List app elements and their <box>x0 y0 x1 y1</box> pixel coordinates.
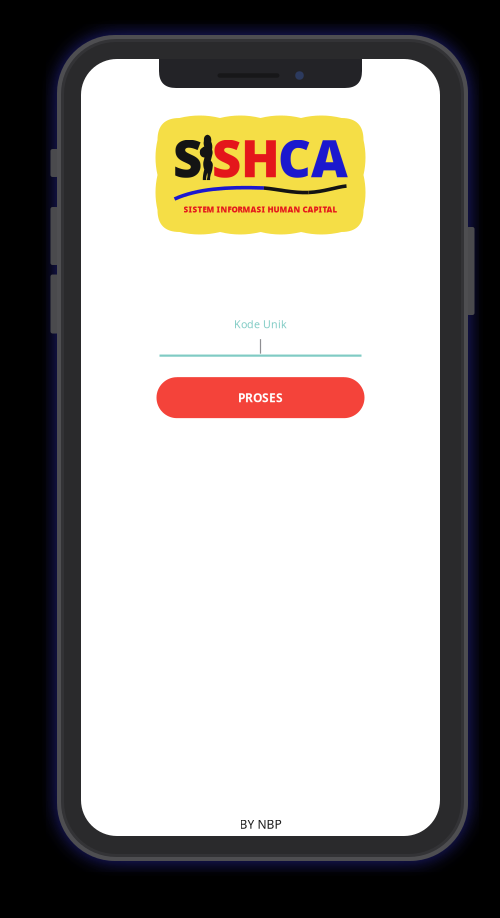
button[interactable]: PROSES <box>156 377 364 418</box>
staticText: BY NBP <box>239 816 281 832</box>
staticText: PROSES <box>238 390 283 406</box>
staticText: CA <box>278 124 348 191</box>
staticText: Kode Unik <box>234 317 287 331</box>
staticText: SISTEM INFORMASI HUMAN CAPITAL <box>183 204 337 215</box>
button[interactable]: Kode Unik <box>159 317 361 357</box>
staticText: S <box>173 124 202 191</box>
staticText: SH <box>212 124 280 191</box>
